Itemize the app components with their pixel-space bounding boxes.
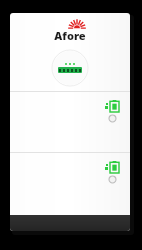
button[interactable]: Battery status: [105, 161, 119, 173]
button[interactable]: Battery status: [105, 100, 119, 112]
button[interactable]: [52, 50, 88, 86]
button[interactable]: Battery status: [10, 153, 130, 215]
button[interactable]: Status indicator: [109, 176, 116, 183]
button[interactable]: Battery status: [10, 92, 130, 152]
button[interactable]: Afore logo: [48, 27, 92, 43]
button[interactable]: Status indicator: [109, 115, 116, 122]
staticText: Afore: [54, 28, 86, 43]
button[interactable]: Afore logo: [10, 13, 130, 91]
